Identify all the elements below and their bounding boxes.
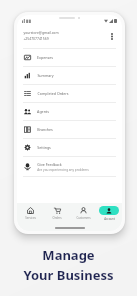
button[interactable]: Expenses bbox=[17, 49, 122, 66]
button[interactable]: Orders bbox=[44, 203, 70, 224]
staticText: Agents bbox=[37, 109, 49, 114]
staticText: Account bbox=[104, 217, 115, 221]
button[interactable]: Completed Orders bbox=[17, 85, 122, 102]
button[interactable]: Branches bbox=[17, 121, 122, 138]
staticText: Manage bbox=[42, 246, 95, 264]
staticText: Are you experiencing any problems bbox=[37, 168, 89, 172]
staticText: yourstore@gmail.com bbox=[23, 30, 59, 35]
button[interactable]: Give Feedback bbox=[17, 157, 122, 176]
button[interactable]: yourstore@gmail.com bbox=[17, 26, 122, 45]
staticText: Summary bbox=[37, 73, 54, 78]
staticText: Give Feedback bbox=[37, 162, 62, 167]
button[interactable]: Services bbox=[17, 203, 44, 224]
button[interactable]: Customers bbox=[70, 203, 96, 224]
button[interactable]: Summary bbox=[17, 67, 122, 84]
staticText: Branches bbox=[37, 127, 53, 132]
staticText: Orders bbox=[52, 216, 62, 220]
staticText: +254707741569 bbox=[23, 36, 49, 41]
staticText: Settings bbox=[37, 145, 51, 150]
staticText: Completed Orders bbox=[37, 91, 69, 96]
button[interactable]: Settings bbox=[17, 139, 122, 156]
button[interactable]: Account bbox=[96, 203, 122, 224]
staticText: Customers bbox=[76, 216, 91, 220]
button[interactable]: More options bbox=[107, 31, 117, 41]
staticText: Expenses bbox=[37, 55, 53, 60]
staticText: Your Business bbox=[23, 266, 114, 284]
button[interactable]: Agents bbox=[17, 103, 122, 120]
staticText: Services bbox=[25, 216, 36, 220]
